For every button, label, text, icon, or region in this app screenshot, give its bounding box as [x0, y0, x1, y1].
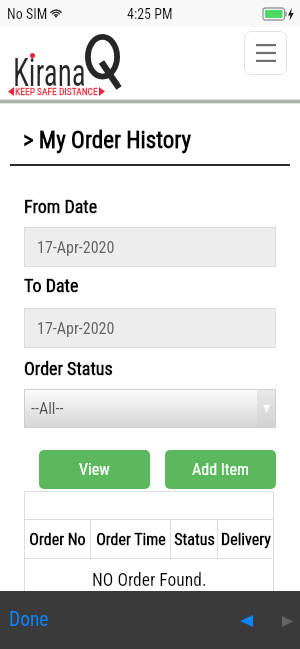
button[interactable]: --All-- [24, 389, 276, 428]
staticText: Add Item [192, 460, 250, 479]
staticText: 17-Apr-2020 [37, 238, 115, 257]
staticText: > My Order History [23, 127, 192, 154]
staticText: KEEP SAFE DISTANCE [15, 86, 98, 97]
staticText: From Date [24, 196, 98, 217]
staticText: 4:25 PM [127, 6, 173, 22]
staticText: Order Time [96, 530, 166, 549]
staticText: View [79, 460, 110, 479]
staticText: Done [9, 608, 49, 631]
staticText: 17-Apr-2020 [37, 319, 115, 338]
button[interactable]: 17-Apr-2020 [24, 227, 276, 267]
button[interactable]: Add Item [165, 450, 276, 489]
staticText: Kirana [13, 50, 86, 96]
staticText: No SIM [7, 6, 48, 22]
button[interactable]: Next field [273, 607, 300, 635]
button[interactable]: 17-Apr-2020 [24, 308, 276, 348]
staticText: NO Order Found. [92, 570, 207, 591]
button[interactable]: Done [9, 608, 49, 631]
staticText: To Date [24, 275, 79, 296]
staticText: Delivery [221, 530, 271, 549]
button[interactable]: Previous field [232, 607, 260, 635]
staticText: Order No [29, 530, 86, 549]
staticText: --All-- [31, 399, 64, 418]
button[interactable]: Menu [244, 31, 287, 75]
button[interactable]: View [39, 450, 150, 489]
staticText: Status [174, 530, 215, 549]
staticText: Order Status [24, 358, 113, 379]
